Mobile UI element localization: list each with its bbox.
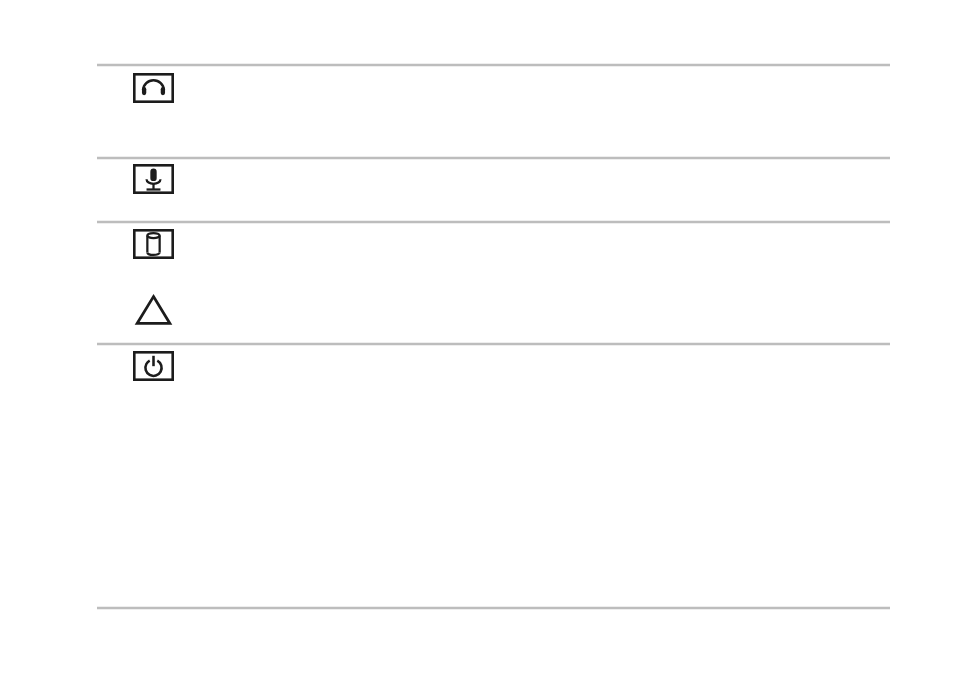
button[interactable]: Power xyxy=(133,351,174,381)
button[interactable]: Headphones xyxy=(133,73,174,103)
button[interactable]: Microphone xyxy=(133,164,174,194)
button[interactable]: Storage drive xyxy=(133,229,174,259)
button[interactable]: Warning xyxy=(133,294,174,326)
